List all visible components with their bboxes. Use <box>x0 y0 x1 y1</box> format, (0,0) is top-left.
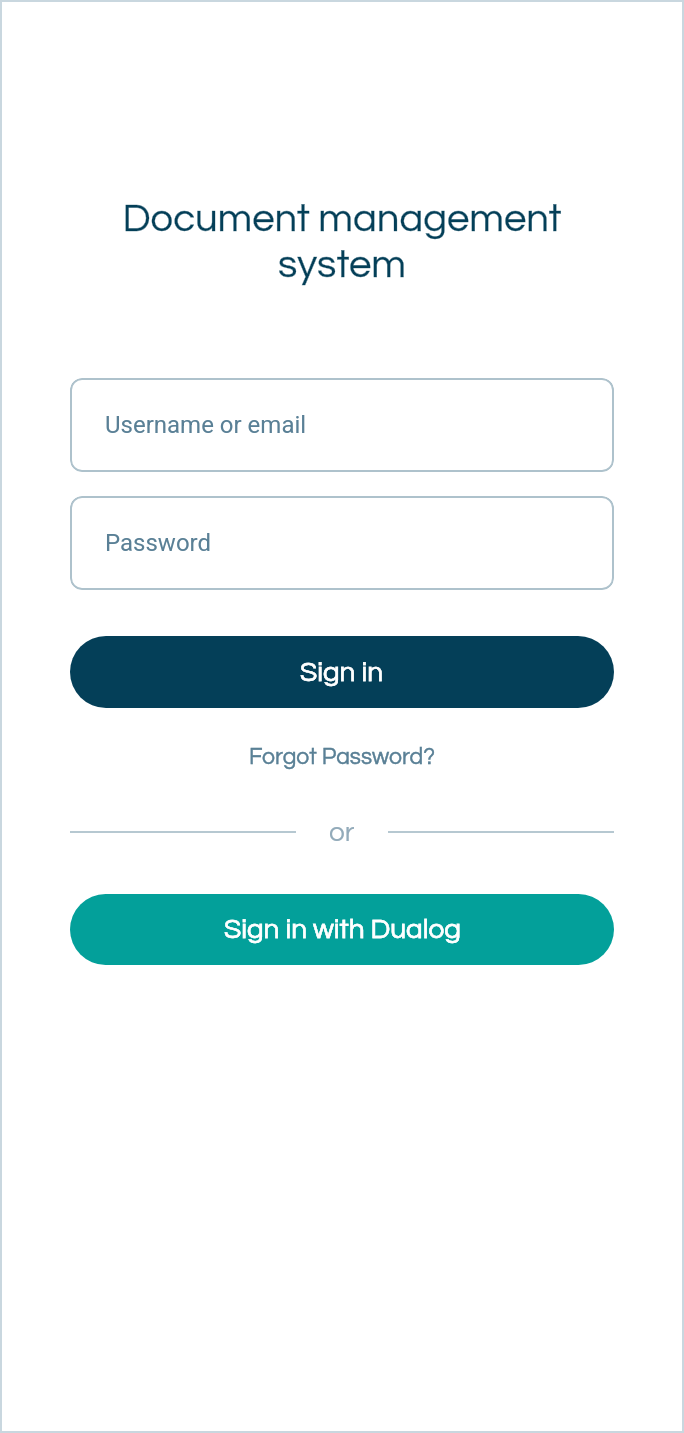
staticText: Username or email <box>105 411 307 439</box>
staticText: Forgot Password? <box>249 745 435 769</box>
button[interactable]: Sign in <box>70 636 614 708</box>
staticText: or <box>329 818 355 847</box>
staticText: Sign in with Dualog <box>224 915 461 944</box>
staticText: Password <box>105 529 212 557</box>
button[interactable]: Password <box>70 496 614 590</box>
button[interactable]: Sign in with Dualog <box>70 894 614 965</box>
staticText: Sign in <box>300 658 384 687</box>
staticText: Document management system <box>70 198 614 286</box>
button[interactable]: Forgot Password? <box>0 736 684 778</box>
staticText: Sign in <box>300 658 384 687</box>
staticText: Forgot Password? <box>249 745 435 769</box>
staticText: Sign in with Dualog <box>224 915 461 944</box>
button[interactable]: Username or email <box>70 378 614 472</box>
staticText: Document management system <box>70 198 614 286</box>
